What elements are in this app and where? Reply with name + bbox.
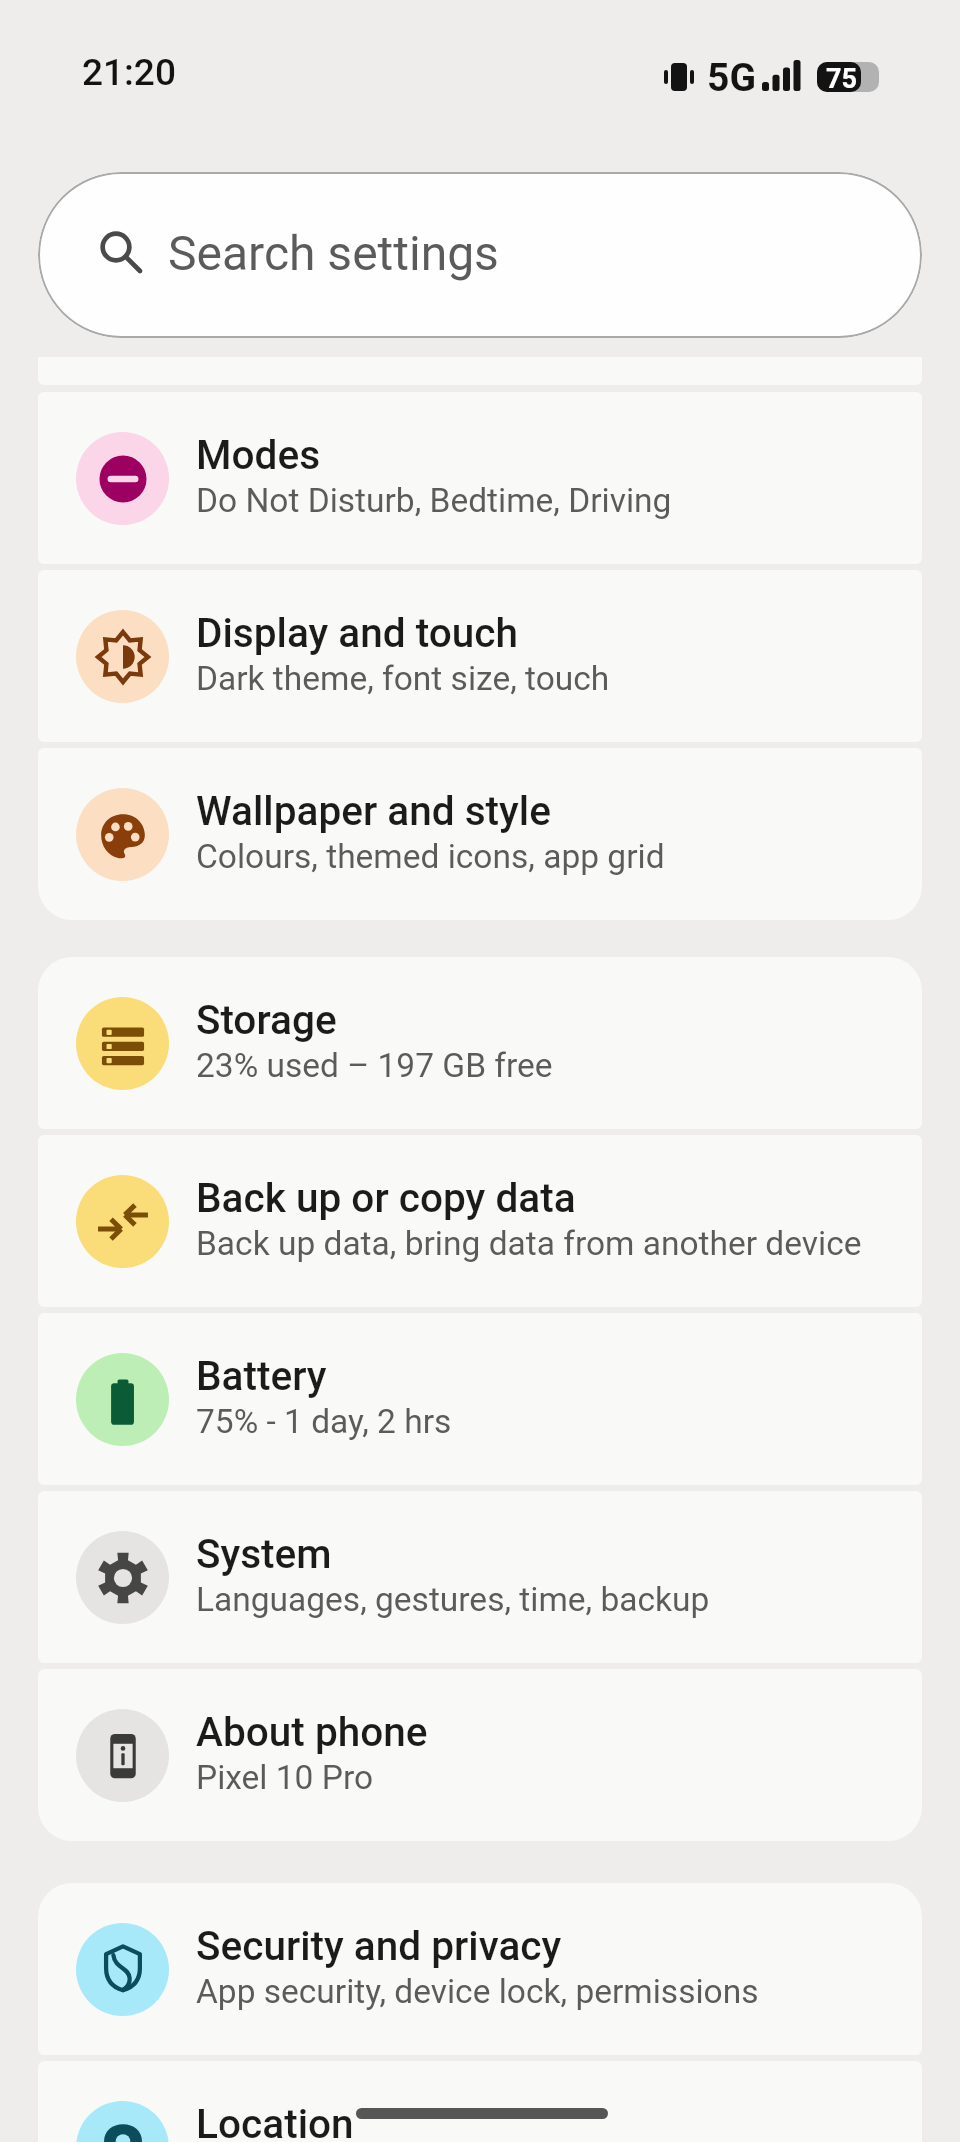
staticText: 23% used – 197 GB free (196, 1046, 553, 1085)
staticText: Pixel 10 Pro (196, 1758, 374, 1797)
staticText: Security and privacy (196, 1922, 562, 1969)
staticText: Languages, gestures, time, backup (196, 1580, 710, 1619)
staticText: Battery (196, 1352, 327, 1399)
staticText: About phone (196, 1708, 428, 1755)
button[interactable]: Storage (38, 957, 922, 1129)
button[interactable]: Search settings (38, 172, 922, 338)
staticText: 21:20 (82, 51, 176, 94)
staticText: App security, device lock, permissions (196, 1972, 759, 2011)
staticText: 75% - 1 day, 2 hrs (196, 1402, 452, 1441)
staticText: Storage (196, 996, 337, 1043)
button[interactable]: Location (38, 2061, 922, 2142)
button[interactable]: Security and privacy (38, 1883, 922, 2055)
staticText: Do Not Disturb, Bedtime, Driving (196, 481, 672, 520)
button[interactable]: About phone (38, 1669, 922, 1841)
staticText: Display and touch (196, 609, 518, 656)
staticText: Search settings (168, 225, 499, 281)
staticText: 75 (826, 63, 857, 95)
staticText: Colours, themed icons, app grid (196, 837, 665, 876)
staticText: Location (196, 2100, 354, 2142)
staticText: Dark theme, font size, touch (196, 659, 610, 698)
staticText: Back up or copy data (196, 1174, 576, 1221)
staticText: System (196, 1530, 332, 1577)
button[interactable]: Display and touch (38, 570, 922, 742)
button[interactable]: Back up or copy data (38, 1135, 922, 1307)
staticText: Modes (196, 431, 321, 478)
button[interactable]: System (38, 1491, 922, 1663)
button[interactable]: Battery (38, 1313, 922, 1485)
staticText: Wallpaper and style (196, 787, 551, 834)
staticText: Back up data, bring data from another de… (196, 1224, 862, 1263)
button[interactable]: Modes (38, 392, 922, 564)
button[interactable]: Wallpaper and style (38, 748, 922, 920)
staticText: 5G (707, 55, 756, 101)
